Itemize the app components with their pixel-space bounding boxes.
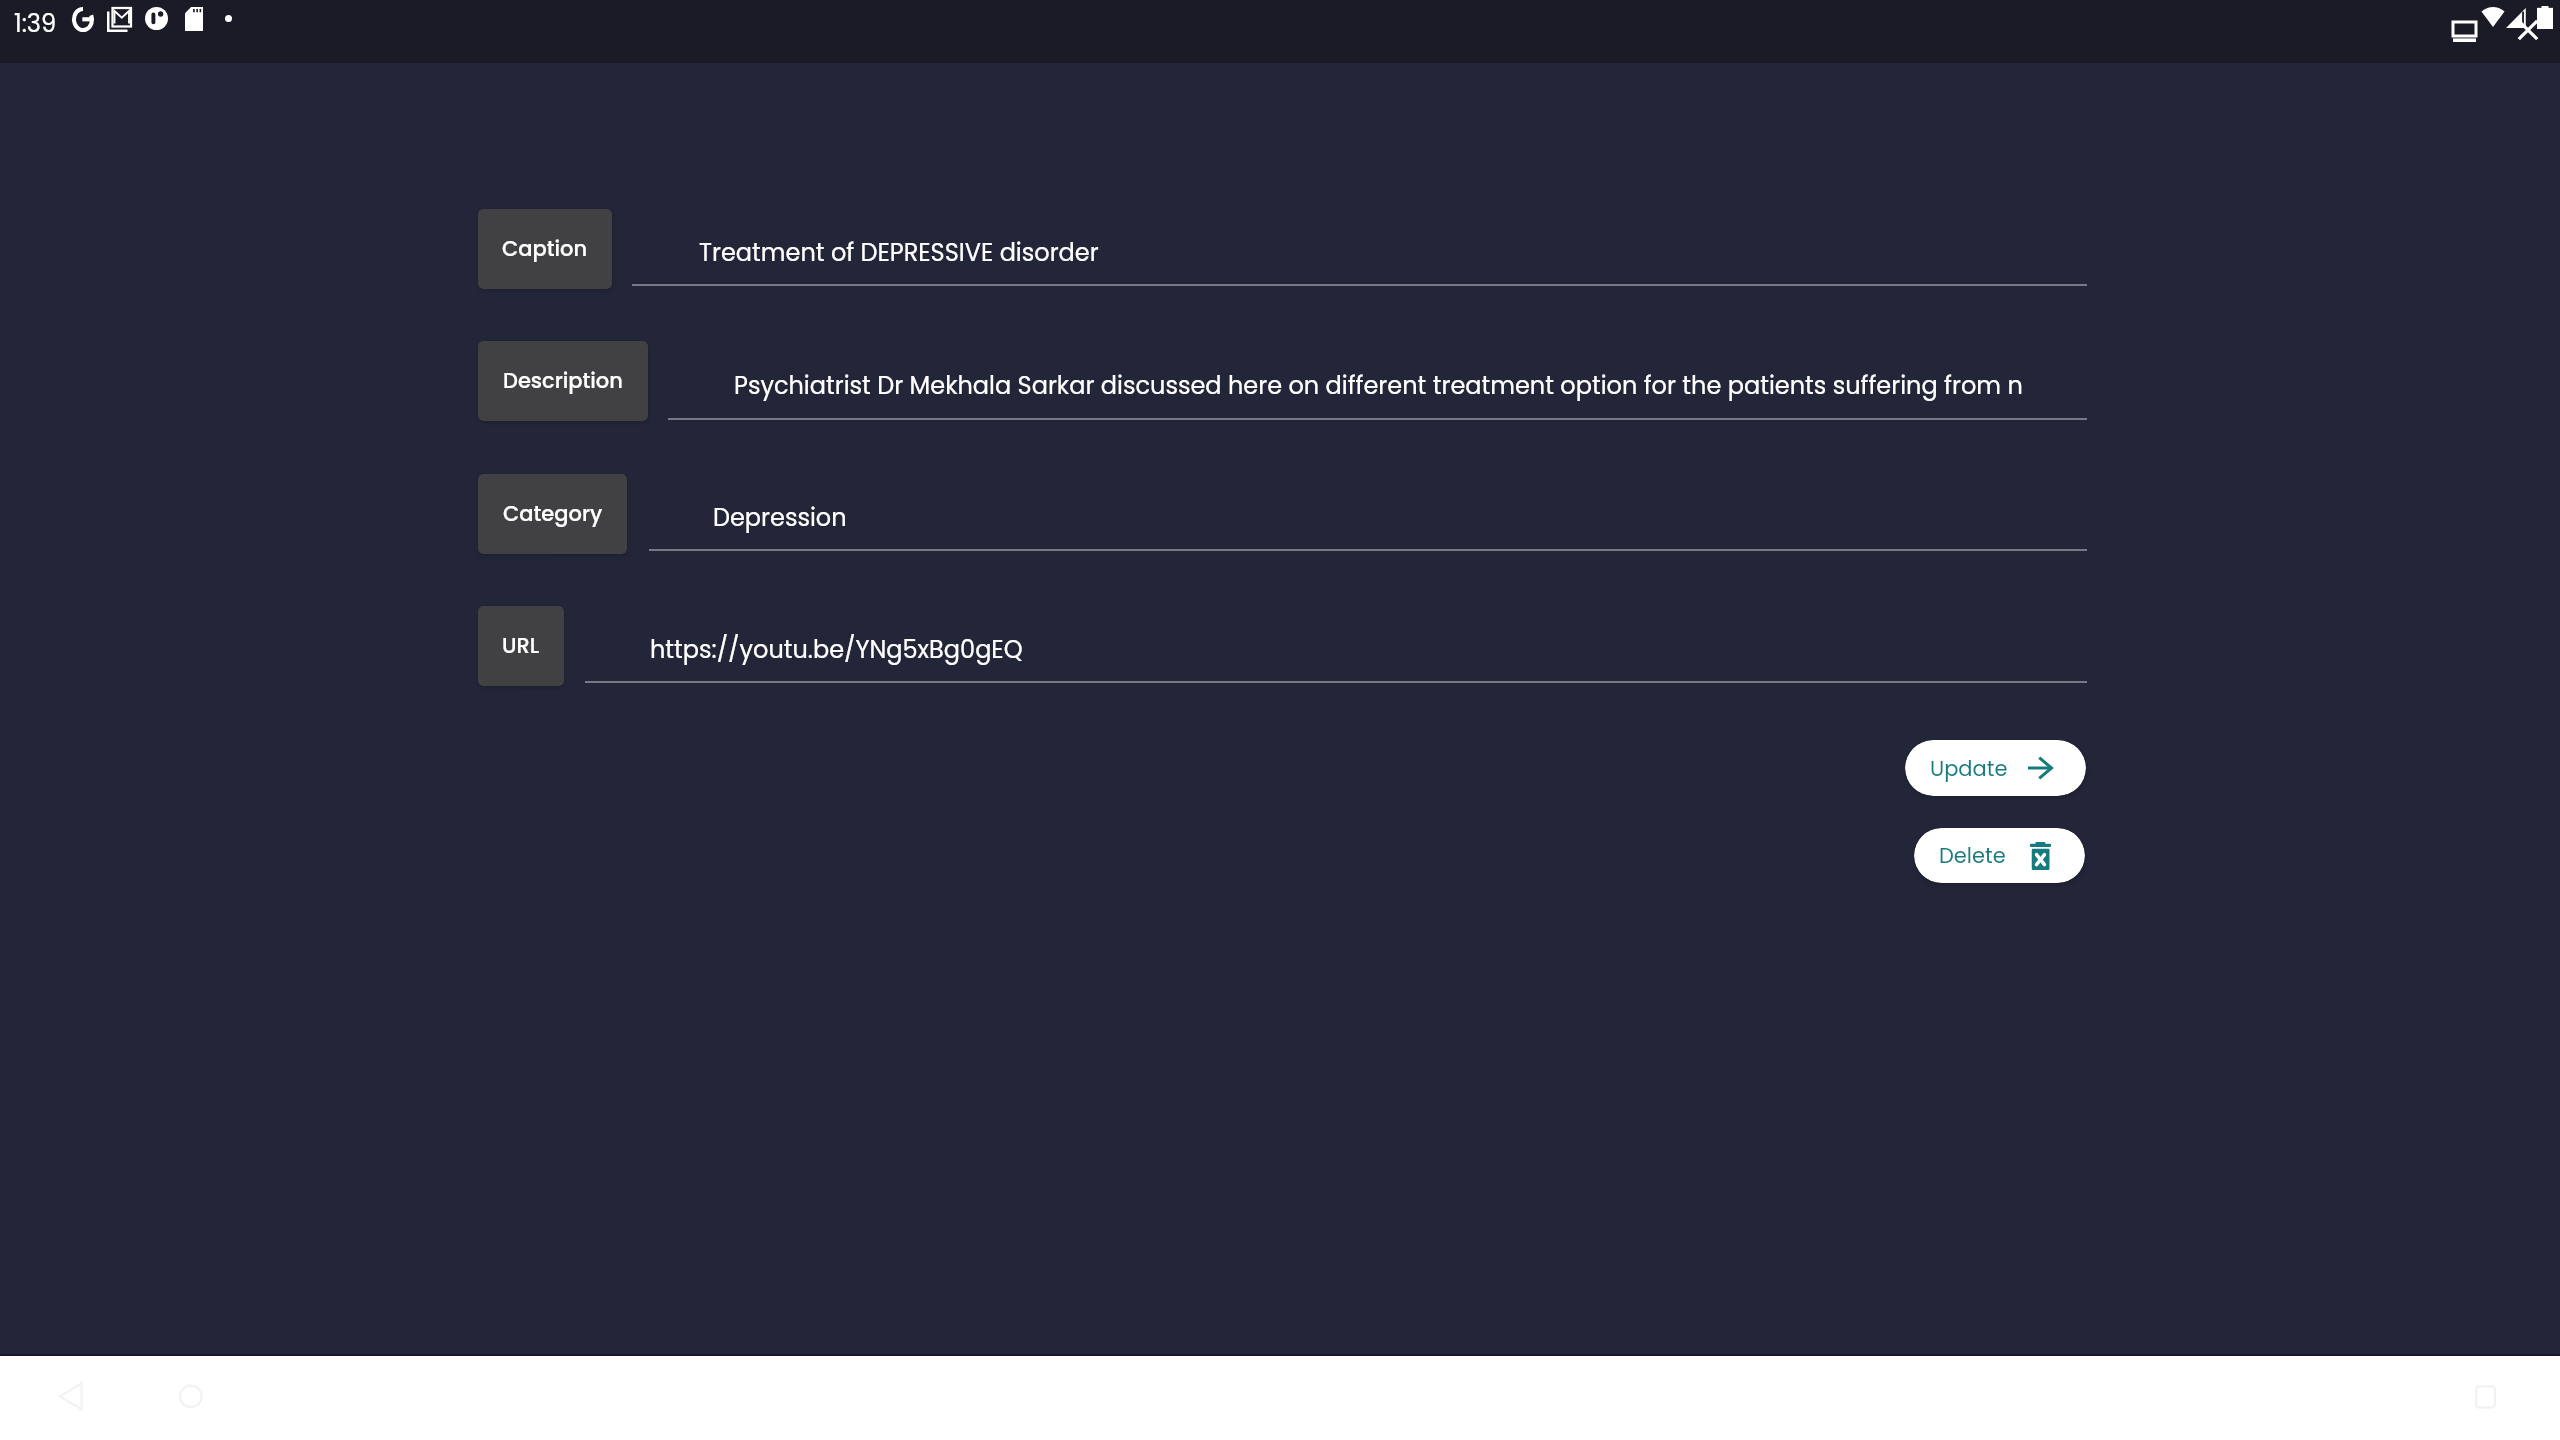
button[interactable]: Treatment of DEPRESSIVE disorder [632, 228, 2087, 286]
button[interactable]: Caption [478, 209, 612, 289]
button[interactable]: Update [1905, 740, 2086, 796]
staticText: URL [502, 631, 540, 660]
staticText: Caption [502, 234, 588, 263]
button[interactable]: Psychiatrist Dr Mekhala Sarkar discussed… [668, 362, 2087, 420]
staticText: Psychiatrist Dr Mekhala Sarkar discussed… [734, 369, 2023, 403]
button[interactable]: URL [478, 606, 564, 686]
staticText: Treatment of DEPRESSIVE disorder [699, 236, 1099, 270]
button[interactable]: Description [478, 341, 648, 421]
staticText: 1:39 [14, 7, 57, 41]
staticText: https://youtu.be/YNg5xBg0gEQ [650, 633, 1023, 667]
button[interactable]: Depression [649, 493, 2087, 551]
staticText: Depression [713, 501, 847, 535]
staticText: Update [1930, 754, 2008, 783]
staticText: Category [503, 499, 603, 528]
staticText: Description [503, 366, 623, 395]
button[interactable]: Category [478, 474, 627, 554]
button[interactable]: Delete [1914, 828, 2085, 883]
staticText: Delete [1939, 841, 2006, 870]
button[interactable]: https://youtu.be/YNg5xBg0gEQ [585, 625, 2087, 683]
